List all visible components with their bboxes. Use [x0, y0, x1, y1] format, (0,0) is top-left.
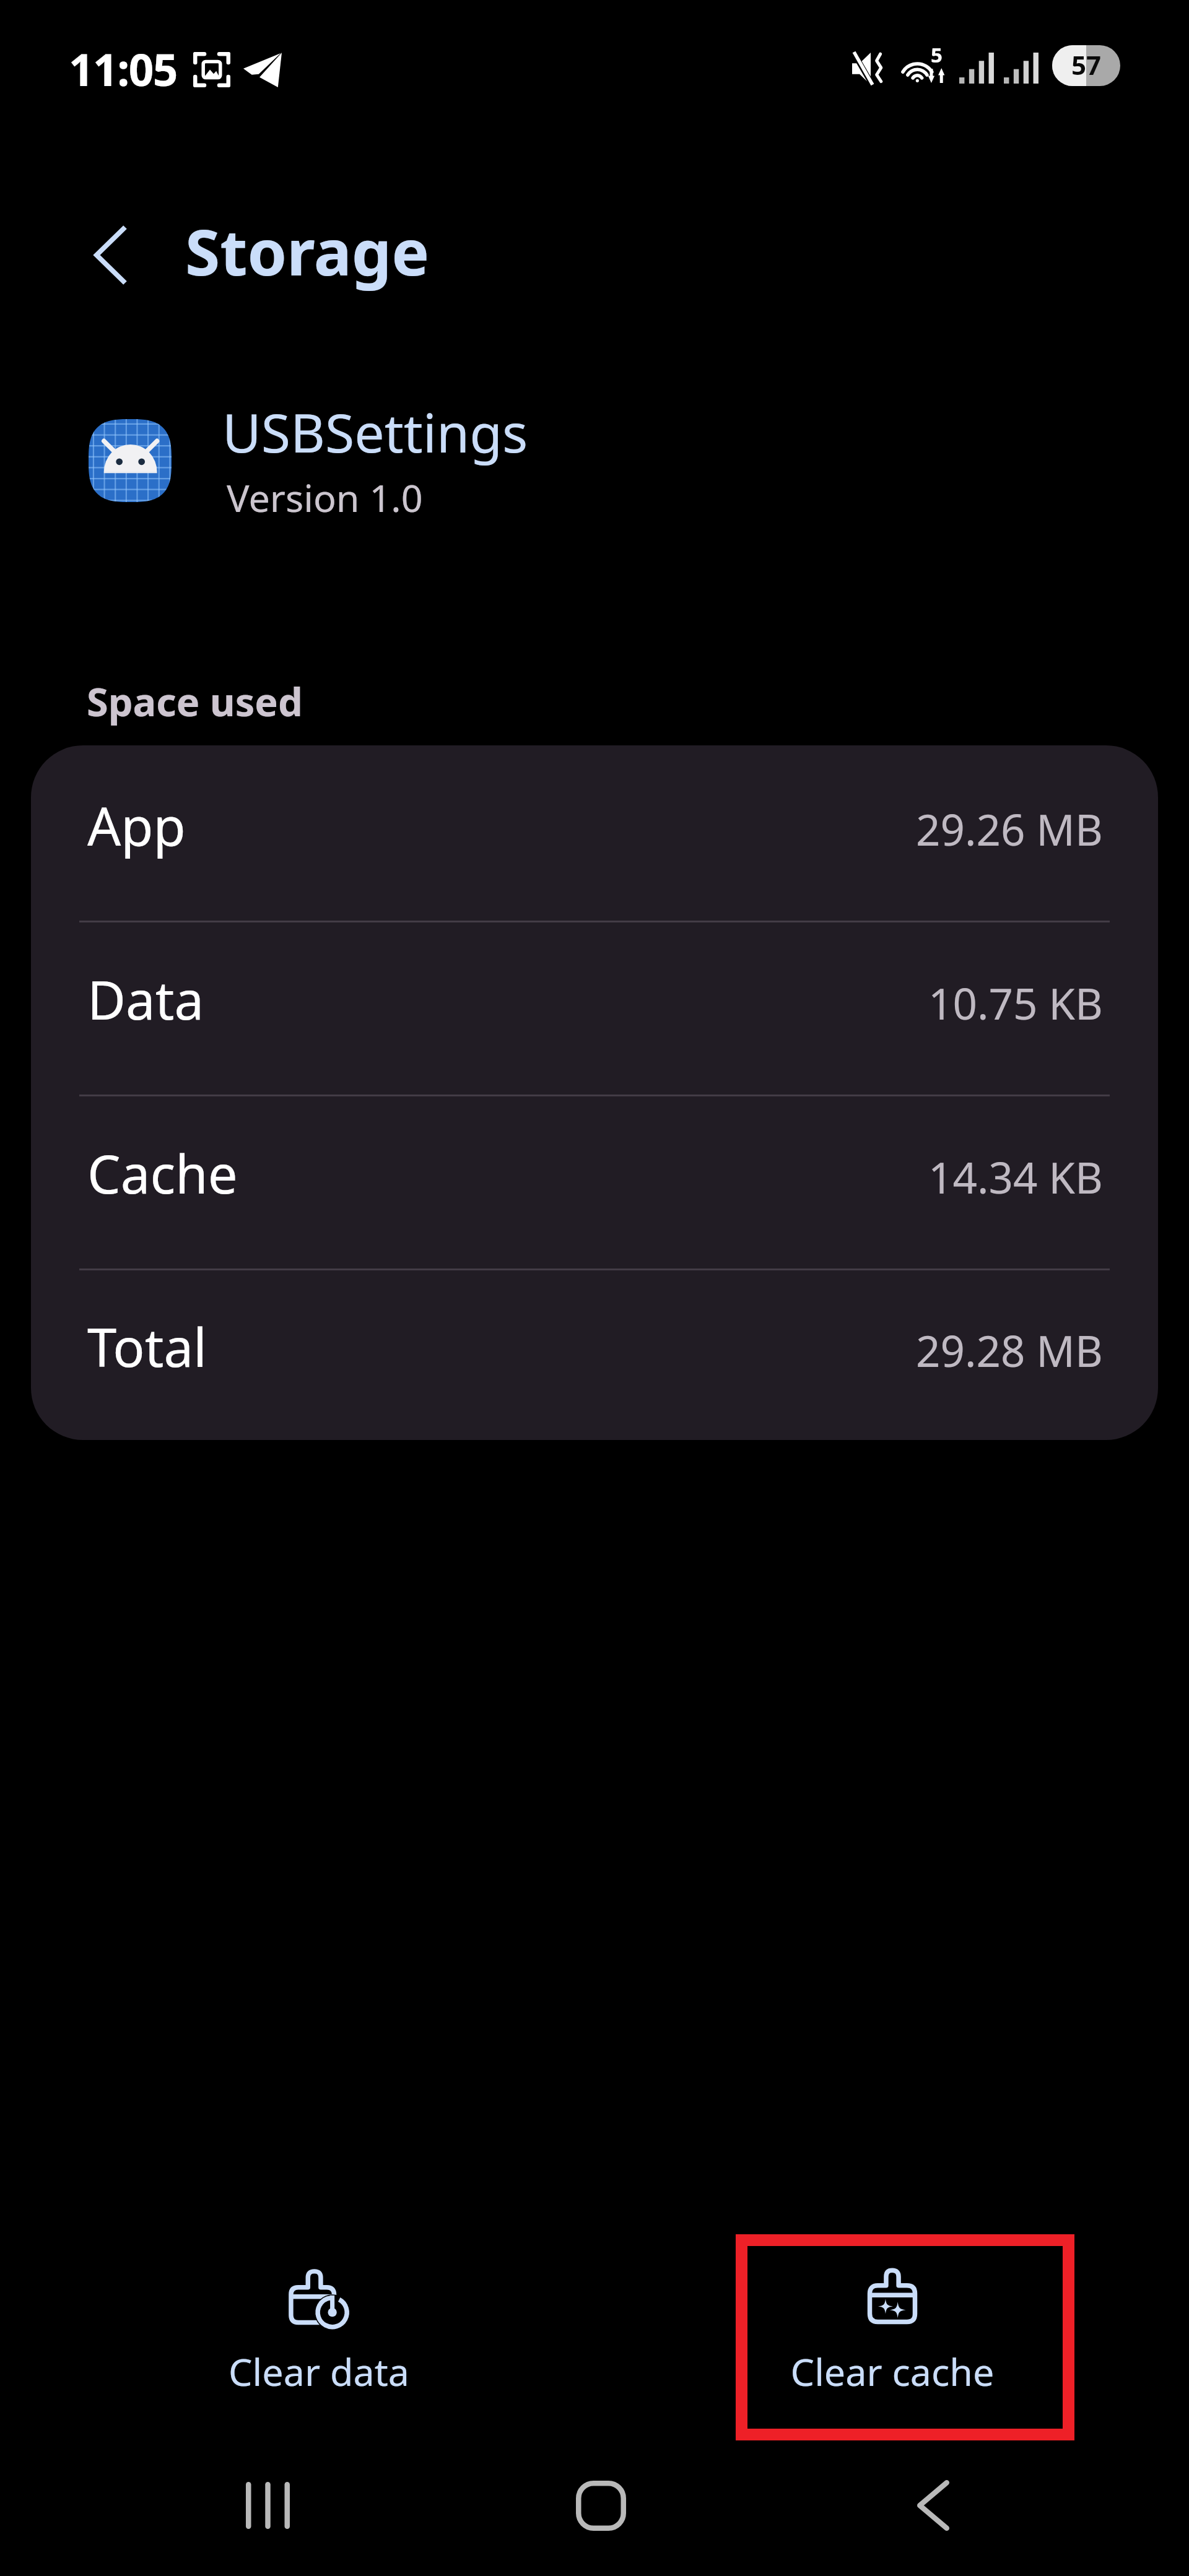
- button[interactable]: App: [31, 745, 1158, 919]
- staticText: Total: [87, 1311, 207, 1382]
- button[interactable]: Clear data: [15, 2229, 610, 2445]
- staticText: 57: [1071, 47, 1102, 82]
- staticText: 14.34 KB: [928, 1148, 1103, 1206]
- button[interactable]: Back: [830, 2464, 1019, 2576]
- staticText: Storage: [185, 208, 430, 294]
- staticText: 11:05: [69, 39, 177, 99]
- staticText: App: [87, 789, 186, 861]
- staticText: Version 1.0: [227, 472, 423, 523]
- button[interactable]: Cache: [31, 1093, 1158, 1267]
- staticText: 10.75 KB: [928, 974, 1103, 1032]
- staticText: Clear cache: [741, 2346, 1044, 2397]
- staticText: Clear data: [167, 2346, 471, 2397]
- button[interactable]: Back: [78, 209, 147, 305]
- button[interactable]: Home: [502, 2464, 690, 2576]
- button[interactable]: Data: [31, 919, 1158, 1093]
- staticText: 29.28 MB: [916, 1321, 1103, 1379]
- button[interactable]: Recent apps: [173, 2464, 362, 2576]
- staticText: Space used: [87, 675, 303, 728]
- staticText: USBSettings: [222, 396, 528, 468]
- button[interactable]: Total: [31, 1267, 1158, 1440]
- staticText: Cache: [87, 1137, 238, 1209]
- staticText: 5: [931, 41, 943, 69]
- staticText: Data: [87, 963, 204, 1035]
- staticText: 29.26 MB: [916, 800, 1103, 858]
- button[interactable]: Clear cache: [594, 2229, 1174, 2445]
